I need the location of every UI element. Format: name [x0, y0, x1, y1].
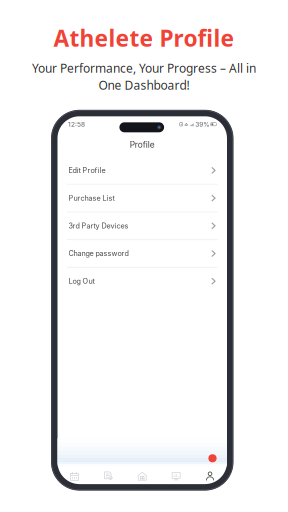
- staticText: Edit Profile: [68, 166, 105, 175]
- staticText: 12:58: [68, 120, 85, 128]
- staticText: Your Performance, Your Progress – All in: [32, 60, 256, 76]
- button[interactable]: Profile: [193, 469, 227, 483]
- staticText: Log Out: [68, 277, 94, 285]
- button[interactable]: Log Out: [57, 268, 227, 295]
- button[interactable]: Change password: [57, 240, 227, 267]
- button[interactable]: Purchase List: [57, 185, 227, 211]
- button[interactable]: Schedule: [57, 469, 91, 483]
- staticText: 39%: [195, 120, 209, 128]
- button[interactable]: Home: [125, 469, 159, 483]
- button[interactable]: Stats: [159, 469, 193, 483]
- staticText: One Dashboard!: [98, 77, 189, 93]
- staticText: Change password: [68, 249, 128, 258]
- staticText: Purchase List: [68, 194, 114, 202]
- staticText: 3rd Party Devices: [68, 221, 128, 230]
- button[interactable]: 3rd Party Devices: [57, 212, 227, 239]
- button[interactable]: Edit Profile: [57, 157, 227, 184]
- button[interactable]: Plans: [91, 469, 125, 483]
- staticText: Profile: [130, 140, 155, 150]
- staticText: Athelete Profile: [53, 23, 234, 53]
